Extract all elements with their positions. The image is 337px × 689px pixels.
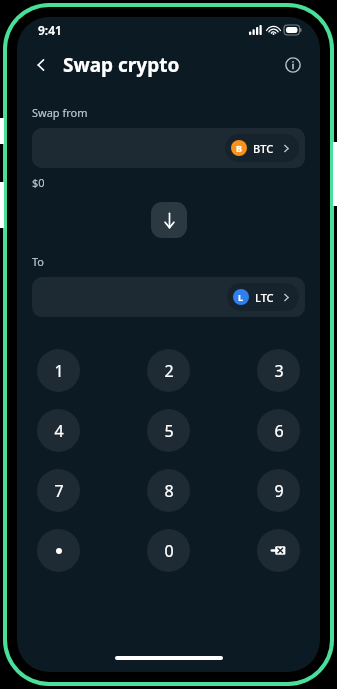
button[interactable]: Decimal point xyxy=(37,529,80,572)
staticText: 6 xyxy=(274,420,284,442)
staticText: B xyxy=(236,142,242,154)
button[interactable]: 0 xyxy=(147,529,190,572)
staticText: 5 xyxy=(164,420,174,442)
button[interactable]: 3 xyxy=(257,349,300,392)
staticText: 2 xyxy=(164,360,174,382)
button[interactable]: 2 xyxy=(147,349,190,392)
button[interactable]: 4 xyxy=(37,409,80,452)
staticText: 8 xyxy=(164,480,174,502)
staticText: 3 xyxy=(274,360,284,382)
staticText: 9:41 xyxy=(38,22,62,38)
button[interactable]: B xyxy=(225,134,299,162)
button[interactable]: Information xyxy=(278,50,308,80)
button[interactable]: Back xyxy=(25,49,57,81)
button[interactable]: 8 xyxy=(147,469,190,512)
staticText: LTC xyxy=(255,290,274,305)
button[interactable]: L xyxy=(32,277,305,317)
staticText: BTC xyxy=(253,141,274,156)
button[interactable]: Swap direction xyxy=(151,202,187,238)
staticText: 9 xyxy=(274,480,284,502)
staticText: 7 xyxy=(54,480,64,502)
staticText: To xyxy=(32,254,45,269)
button[interactable]: L xyxy=(227,283,299,311)
staticText: L xyxy=(238,291,244,303)
staticText: Swap from xyxy=(32,105,88,120)
staticText: 4 xyxy=(54,420,64,442)
button[interactable]: Backspace xyxy=(257,529,300,572)
button[interactable]: 1 xyxy=(37,349,80,392)
staticText: 1 xyxy=(54,360,64,382)
button[interactable]: 9 xyxy=(257,469,300,512)
button[interactable]: B xyxy=(32,128,305,168)
staticText: Swap crypto xyxy=(63,52,180,78)
staticText: 0 xyxy=(164,540,174,562)
button[interactable]: 5 xyxy=(147,409,190,452)
staticText: $0 xyxy=(32,175,45,190)
button[interactable]: 7 xyxy=(37,469,80,512)
button[interactable]: 6 xyxy=(257,409,300,452)
